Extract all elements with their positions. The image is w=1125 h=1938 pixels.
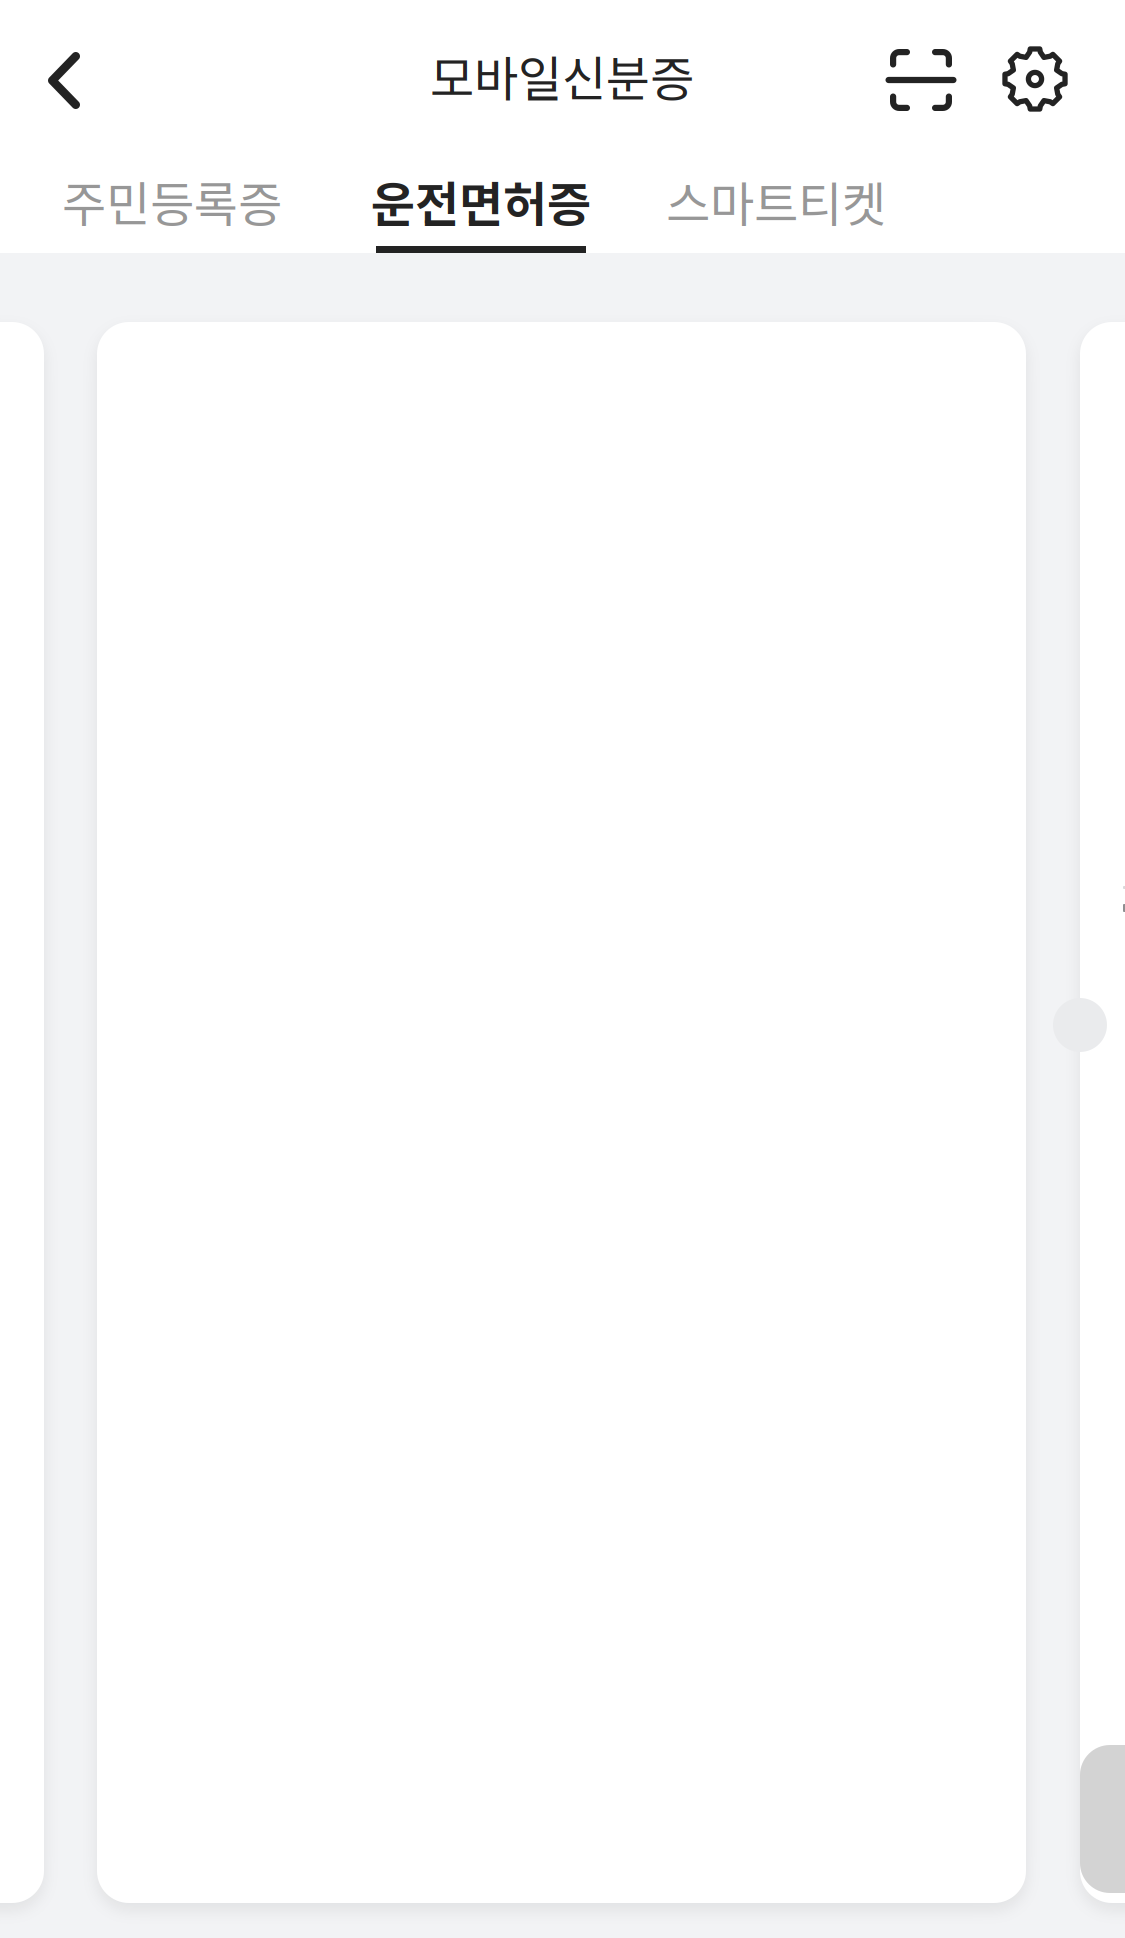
button[interactable]: 주민등록증	[46, 145, 298, 257]
staticText: 스마트티켓	[666, 166, 886, 236]
staticText: 주민등록증	[62, 166, 282, 236]
button[interactable]: Settings	[979, 23, 1091, 135]
button[interactable]: Scan QR code	[865, 24, 977, 136]
staticText: 모바일신분증	[430, 41, 694, 110]
button[interactable]: 스마트티켓	[650, 145, 902, 257]
button[interactable]: Back	[8, 18, 120, 143]
staticText: 운전면허증	[371, 166, 591, 236]
button[interactable]: 운전면허증	[355, 141, 607, 253]
